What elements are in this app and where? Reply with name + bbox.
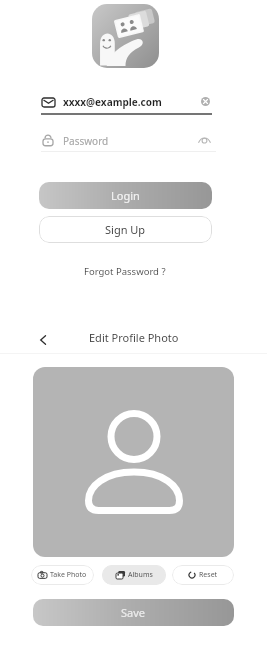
staticText: Save (121, 605, 146, 620)
staticText: Login (111, 188, 140, 203)
button[interactable]: Profile photo (33, 367, 234, 557)
button[interactable]: Save (33, 599, 234, 626)
button[interactable]: Reset (172, 565, 234, 585)
button[interactable]: Take Photo (31, 565, 94, 585)
staticText: Take Photo (50, 570, 87, 580)
staticText: Forgot Password ? (84, 265, 166, 278)
staticText: Reset (199, 570, 218, 580)
button[interactable]: Email (39, 93, 57, 111)
button[interactable]: Clear (197, 93, 214, 110)
staticText: Password (63, 134, 109, 148)
staticText: xxxx@example.com (63, 95, 162, 109)
button[interactable]: Back (32, 329, 54, 351)
button[interactable]: Sign Up (39, 216, 212, 243)
button[interactable]: Albums (102, 565, 166, 585)
staticText: Edit Profile Photo (89, 330, 179, 345)
button[interactable]: Forgot Password ? (82, 262, 168, 280)
button[interactable]: Show password (195, 131, 213, 149)
staticText: Albums (128, 570, 153, 580)
button[interactable]: Login (39, 182, 212, 209)
staticText: Sign Up (105, 222, 146, 237)
